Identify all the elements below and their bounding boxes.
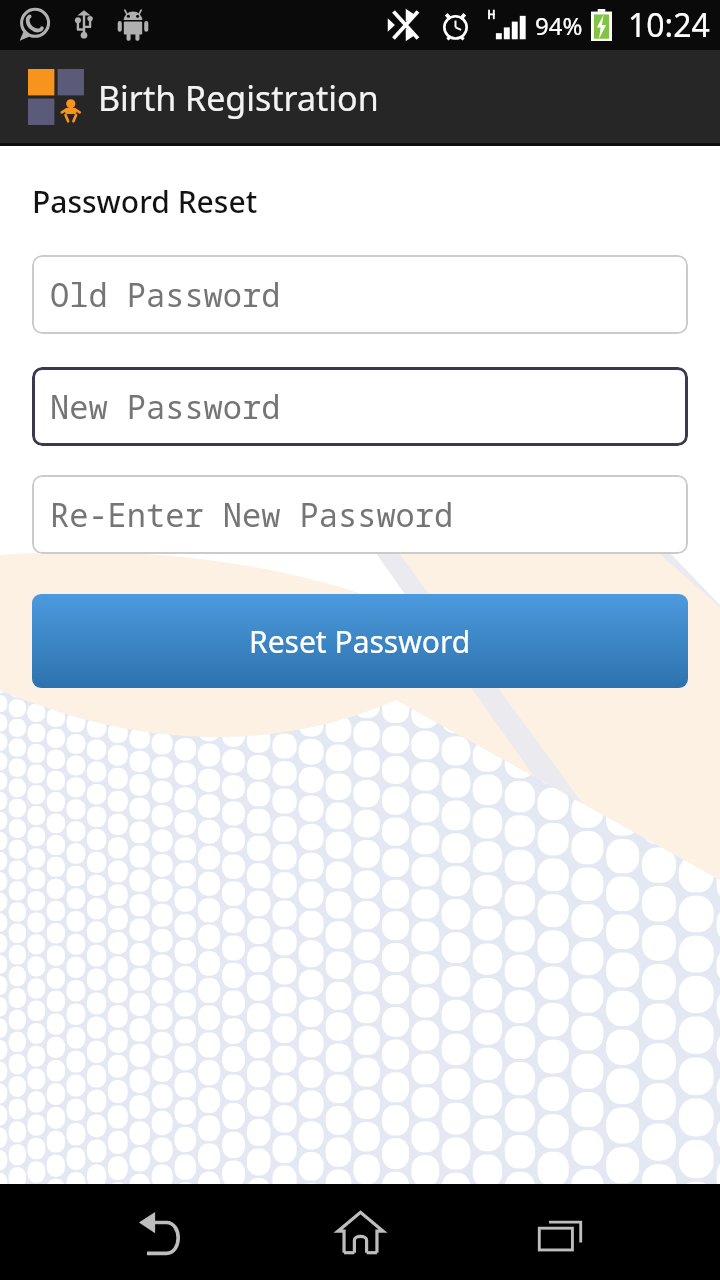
button[interactable]: Re-Enter New Password: [32, 475, 688, 554]
button[interactable]: Reset Password: [32, 594, 688, 688]
staticText: 94%: [535, 9, 583, 42]
button[interactable]: Recent apps: [510, 1184, 610, 1280]
staticText: Password Reset: [32, 181, 258, 222]
button[interactable]: Home: [310, 1184, 410, 1280]
staticText: Re-Enter New Password: [50, 493, 454, 537]
button[interactable]: Back: [110, 1184, 210, 1280]
staticText: Old Password: [50, 273, 281, 317]
staticText: Reset Password: [249, 621, 471, 662]
button[interactable]: New Password: [32, 367, 688, 446]
staticText: 10:24: [628, 3, 710, 47]
staticText: New Password: [50, 385, 281, 429]
staticText: Birth Registration: [98, 75, 379, 121]
button[interactable]: Old Password: [32, 255, 688, 334]
